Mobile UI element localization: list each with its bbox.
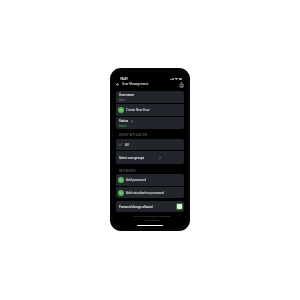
button[interactable]: Back: [114, 81, 120, 87]
staticText: 10:41: [120, 77, 128, 81]
button[interactable]: All: [116, 139, 184, 150]
staticText: All: [125, 143, 129, 147]
button[interactable]: Username: [116, 91, 184, 103]
button[interactable]: Create New User: [116, 104, 184, 116]
staticText: Status: [119, 119, 129, 123]
staticText: Username: [119, 93, 135, 97]
button[interactable]: Add password: [116, 174, 184, 186]
staticText: Create New User: [126, 108, 150, 112]
button[interactable]: Password change allowed: [116, 201, 184, 212]
button[interactable]: Add visualization password: [116, 187, 184, 198]
staticText: Active: [119, 124, 127, 128]
button[interactable]: Status: [116, 117, 184, 129]
staticText: User Management: [122, 82, 149, 86]
staticText: Add password: [126, 178, 146, 182]
staticText: Allow this user's password to be changed…: [133, 215, 171, 221]
button[interactable]: Save: [178, 81, 185, 88]
staticText: Password change allowed: [119, 205, 153, 209]
staticText: Add visualization password: [126, 191, 165, 195]
staticText: GROUP AFFILIATION: [119, 133, 148, 137]
staticText: Select user groups: [119, 156, 145, 160]
button[interactable]: Select user groups: [116, 151, 184, 164]
staticText: PASSWORDS: [119, 169, 136, 173]
staticText: Boss: [119, 98, 125, 102]
